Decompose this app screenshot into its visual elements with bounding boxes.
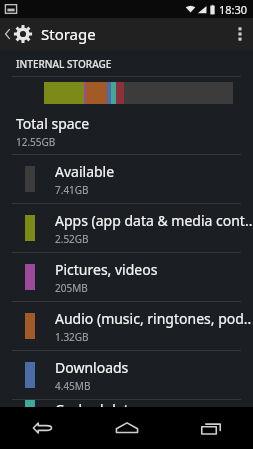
button[interactable]: Back xyxy=(0,407,85,449)
staticText: 7.41GB xyxy=(55,183,89,197)
button[interactable]: Audio (music, ringtones, pod.. xyxy=(0,302,253,350)
staticText: Downloads xyxy=(55,358,129,377)
staticText: Apps (app data & media cont.. xyxy=(55,211,253,230)
button[interactable]: Pictures, videos xyxy=(0,253,253,301)
staticText: Pictures, videos xyxy=(55,260,158,279)
button[interactable]: Apps (app data & media cont.. xyxy=(0,204,253,252)
button[interactable]: Downloads xyxy=(0,351,253,399)
staticText: Available xyxy=(55,162,115,181)
staticText: Storage xyxy=(41,24,96,44)
staticText: 205MB xyxy=(55,281,88,295)
button[interactable]: Home xyxy=(85,407,169,449)
staticText: Cached data xyxy=(55,400,137,407)
button[interactable]: Cached data xyxy=(0,400,253,407)
button[interactable]: Available xyxy=(0,155,253,203)
button[interactable]: Total space xyxy=(0,109,253,154)
staticText: 1.32GB xyxy=(55,330,89,344)
staticText: 4.45MB xyxy=(55,379,91,393)
staticText: 12.55GB xyxy=(16,135,56,149)
staticText: INTERNAL STORAGE xyxy=(16,57,112,71)
staticText: 18:30 xyxy=(219,2,248,17)
staticText: Total space xyxy=(16,114,90,133)
staticText: 2.52GB xyxy=(55,232,89,246)
button[interactable]: More options xyxy=(227,18,253,50)
staticText: Audio (music, ringtones, pod.. xyxy=(55,309,252,328)
button[interactable]: Recent apps xyxy=(169,407,253,449)
button[interactable]: Navigate up xyxy=(0,18,35,50)
